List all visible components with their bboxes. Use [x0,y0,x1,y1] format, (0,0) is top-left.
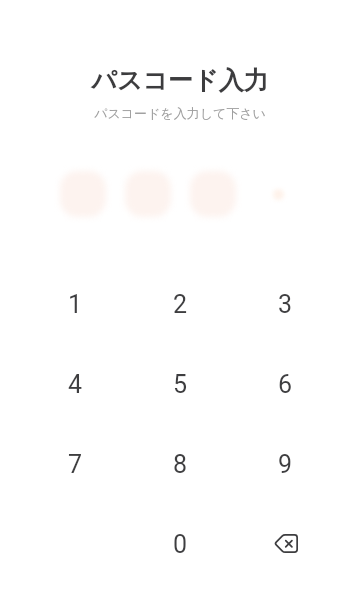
button[interactable]: 1 [22,264,128,344]
button[interactable]: 2 [128,264,233,344]
staticText: 3 [278,290,293,319]
staticText: 2 [173,290,188,319]
staticText: 7 [68,450,83,479]
button[interactable]: 9 [233,424,338,504]
staticText: 4 [68,370,83,399]
button[interactable]: 4 [22,344,128,424]
staticText: 9 [278,450,293,479]
staticText: 1 [68,290,83,319]
staticText: パスコードを入力して下さい [0,105,360,121]
button[interactable]: 7 [22,424,128,504]
button[interactable]: 0 [128,504,233,584]
staticText: 6 [278,370,293,399]
staticText: 5 [173,370,188,399]
button[interactable]: 8 [128,424,233,504]
button[interactable]: 6 [233,344,338,424]
button[interactable]: 3 [233,264,338,344]
staticText: 0 [173,530,188,559]
staticText: 8 [173,450,188,479]
button[interactable]: 5 [128,344,233,424]
button[interactable]: Backspace [233,504,338,584]
staticText: パスコード入力 [0,65,360,96]
